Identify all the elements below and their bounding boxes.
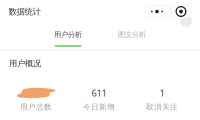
button[interactable]: 图文分析 [100, 24, 164, 49]
button[interactable]: More [145, 5, 169, 18]
staticText: 图文分析 [118, 30, 146, 39]
staticText: 用户分析 [54, 30, 82, 39]
button[interactable]: 用户分析 [36, 24, 100, 49]
staticText: 取消关注 [146, 102, 178, 112]
staticText: 用户总数 [20, 102, 52, 112]
staticText: 1 [159, 87, 164, 99]
staticText: 611 [91, 87, 106, 99]
staticText: 今日新增 [83, 102, 115, 112]
staticText: 用户概况 [9, 58, 41, 69]
button[interactable]: Close [170, 5, 191, 18]
staticText: 数据统计 [8, 6, 40, 17]
